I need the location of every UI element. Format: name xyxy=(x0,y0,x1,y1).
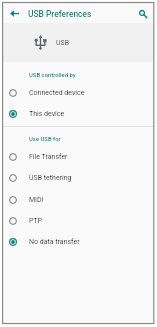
staticText: PTP xyxy=(29,217,43,225)
button[interactable]: Back xyxy=(6,5,22,21)
staticText: No data transfer xyxy=(29,238,80,246)
staticText: This device xyxy=(29,110,65,118)
staticText: USB tethering xyxy=(29,174,72,182)
button[interactable]: File Transfer xyxy=(3,146,153,167)
staticText: Connected device xyxy=(29,89,85,97)
button[interactable]: MIDI xyxy=(3,189,153,210)
staticText: USB xyxy=(56,39,70,47)
button[interactable]: Search xyxy=(135,6,151,22)
staticText: USB controlled by xyxy=(29,72,76,79)
staticText: Use USB for xyxy=(29,136,61,143)
button[interactable]: Connected device xyxy=(3,82,153,103)
button[interactable]: USB tethering xyxy=(3,167,153,188)
staticText: File Transfer xyxy=(29,153,68,161)
button[interactable]: This device xyxy=(3,103,153,124)
button[interactable]: PTP xyxy=(3,210,153,231)
staticText: USB Preferences xyxy=(28,9,92,19)
staticText: MIDI xyxy=(29,196,44,204)
button[interactable]: No data transfer xyxy=(3,231,153,252)
